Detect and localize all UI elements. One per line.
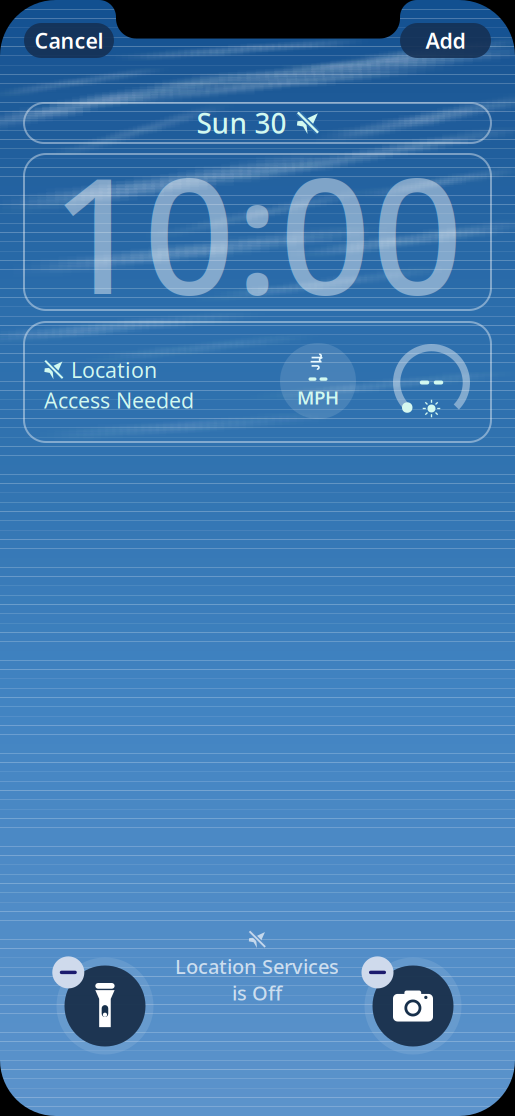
button[interactable]: Sun 30 xyxy=(24,103,491,143)
button[interactable]: Flashlight xyxy=(0,0,515,1116)
staticText: is Off xyxy=(232,980,282,1006)
button[interactable]: Cancel xyxy=(24,23,114,58)
button[interactable]: Location xyxy=(44,350,244,420)
button[interactable] xyxy=(393,344,470,421)
staticText: Cancel xyxy=(34,26,103,55)
staticText: Add xyxy=(425,26,465,55)
staticText: 10:00 xyxy=(51,126,463,338)
button[interactable]: Remove Camera xyxy=(361,956,393,988)
button[interactable]: 10:00 xyxy=(24,154,491,310)
staticText: Access Needed xyxy=(44,386,194,414)
staticText: Location Services xyxy=(175,953,339,980)
staticText: MPH xyxy=(297,385,339,410)
staticText: Sun 30 xyxy=(196,104,286,142)
button[interactable]: Camera xyxy=(0,0,515,1116)
staticText: Location xyxy=(71,356,157,384)
button[interactable]: Add xyxy=(400,23,491,58)
button[interactable]: MPH xyxy=(280,343,356,419)
button[interactable]: Remove Flashlight xyxy=(52,956,84,988)
